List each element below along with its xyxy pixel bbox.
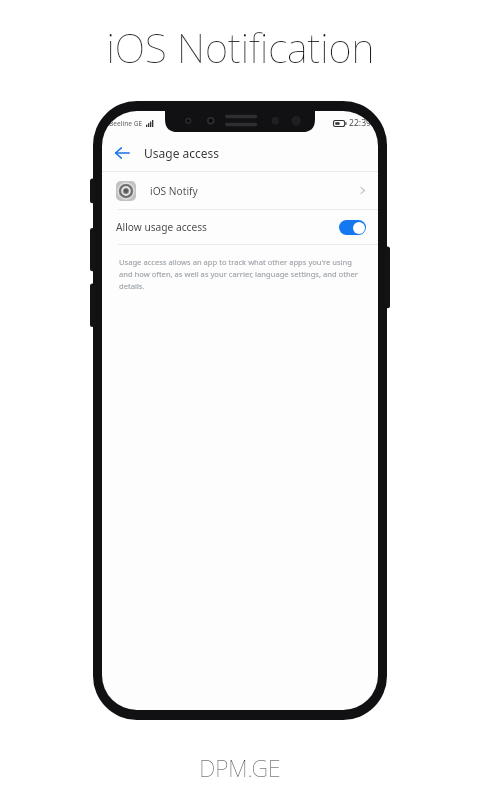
button[interactable]: Back [107, 138, 137, 168]
staticText: DPM.GE [199, 752, 281, 783]
staticText: Allow usage access [116, 220, 339, 234]
staticText: 22:39 [349, 117, 371, 129]
button[interactable]: iOS Notify [102, 172, 378, 209]
button[interactable]: Allow usage access [102, 210, 378, 244]
staticText: iOS Notification [106, 20, 375, 74]
staticText: Beeline GE [109, 119, 143, 128]
button[interactable]: Allow usage access toggle [339, 220, 366, 235]
staticText: iOS Notify [150, 184, 357, 198]
staticText: Usage access allows an app to track what… [119, 257, 361, 291]
staticText: Usage access [144, 145, 220, 161]
